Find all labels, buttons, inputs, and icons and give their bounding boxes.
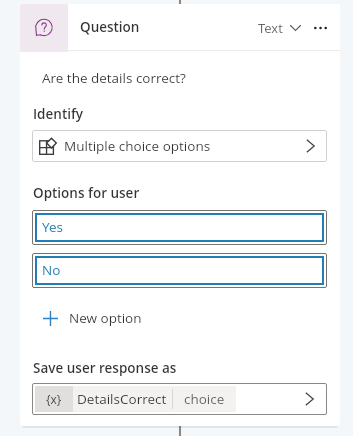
staticText: No	[42, 261, 61, 279]
staticText: Text	[258, 19, 283, 37]
staticText: Identify	[33, 105, 84, 123]
staticText: Options for user	[33, 184, 140, 202]
staticText: {x}	[46, 391, 62, 407]
button[interactable]: New option	[36, 303, 149, 333]
button[interactable]: No	[32, 253, 327, 288]
staticText: New option	[69, 309, 142, 327]
staticText: Save user response as	[33, 359, 177, 377]
button[interactable]: Text	[254, 13, 305, 43]
button[interactable]: More options	[306, 14, 334, 42]
staticText: choice	[184, 390, 225, 408]
staticText: Are the details correct?	[42, 69, 186, 87]
staticText: Yes	[42, 218, 63, 236]
staticText: DetailsCorrect	[77, 390, 167, 408]
button[interactable]: {x}	[32, 383, 327, 415]
button[interactable]: Yes	[32, 210, 327, 245]
button[interactable]: Multiple choice options	[32, 130, 327, 162]
staticText: Multiple choice options	[64, 137, 211, 155]
staticText: Question	[80, 18, 140, 36]
